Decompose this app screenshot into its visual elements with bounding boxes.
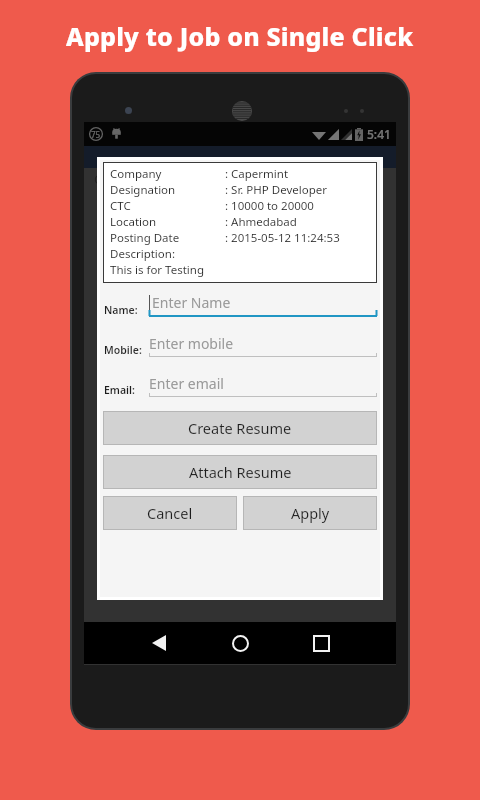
button[interactable]: Recents	[304, 626, 338, 660]
staticText: Cancel	[147, 503, 193, 523]
button[interactable]: Back	[142, 626, 176, 660]
staticText: : Capermint	[271, 170, 343, 188]
staticText: Enter email	[149, 374, 224, 393]
staticText: CTC	[110, 198, 131, 214]
staticText: Apply to Job on Single Click	[66, 19, 414, 53]
button[interactable]: Enter mobile	[149, 334, 377, 357]
staticText: 75	[91, 129, 101, 140]
button[interactable]: Cancel	[103, 496, 237, 530]
button[interactable]: Enter email	[149, 374, 377, 397]
button[interactable]: Home	[223, 626, 257, 660]
staticText: 5:41	[367, 126, 391, 142]
staticText: Description:	[110, 246, 175, 262]
staticText: Attach Resume	[189, 462, 292, 482]
button[interactable]: Create Resume	[103, 411, 377, 445]
staticText: Apply	[291, 503, 330, 523]
button[interactable]: Apply	[243, 496, 377, 530]
staticText: Create Resume	[188, 418, 292, 438]
staticText: Email:	[104, 383, 135, 397]
staticText: : Sr. PHP Developer	[225, 182, 328, 198]
staticText: : Capermint	[225, 166, 289, 182]
button[interactable]: Attach Resume	[103, 455, 377, 489]
staticText: : Capermint	[271, 627, 343, 645]
staticText: This is for Testing	[110, 262, 204, 278]
staticText: Company	[94, 170, 153, 188]
staticText: Location	[110, 214, 157, 230]
staticText: Enter Name	[152, 293, 231, 312]
staticText: : Ahmedabad	[225, 214, 297, 230]
staticText: Posting Date	[110, 230, 180, 246]
staticText: Mobile:	[104, 343, 142, 357]
staticText: : 10000 to 20000	[225, 198, 314, 214]
staticText: Enter mobile	[149, 334, 234, 353]
staticText: Name:	[104, 303, 138, 317]
button[interactable]: Enter Name	[149, 293, 377, 317]
staticText: : 2015-05-12 11:24:53	[225, 230, 340, 246]
staticText: Designation	[110, 182, 176, 198]
staticText: Company	[110, 166, 162, 182]
